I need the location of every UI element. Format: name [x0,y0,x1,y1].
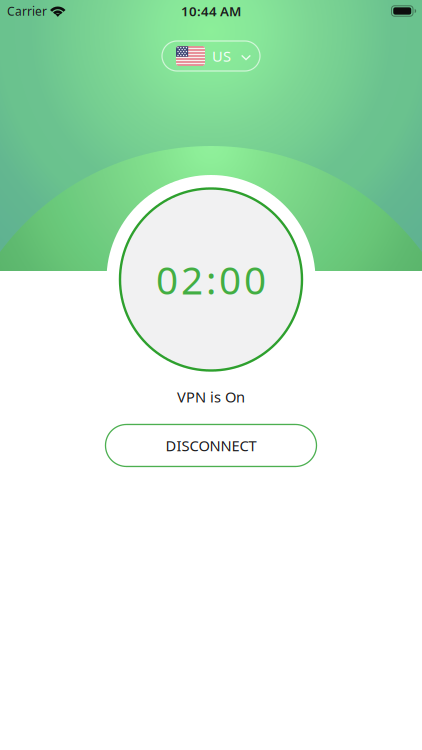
button[interactable]: US [162,41,260,71]
staticText: VPN is On [177,387,245,406]
staticText: US [212,46,231,66]
staticText: Carrier [7,3,47,19]
button[interactable]: DISCONNECT [105,424,316,466]
staticText: 02:00 [156,254,266,305]
staticText: DISCONNECT [165,436,256,455]
staticText: 10:44 AM [181,2,241,20]
